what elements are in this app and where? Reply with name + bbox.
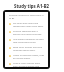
staticText: Set small daily goals and review them of… <box>13 22 45 28</box>
staticText: Use spaced repetition to learn new vocab… <box>13 38 45 44</box>
staticText: Practical routines to move from A1 to B2 <box>9 14 45 20</box>
staticText: Study tips A1-B2 <box>14 3 50 9</box>
staticText: Listen to podcasts slowly, then at norma… <box>13 54 45 60</box>
button[interactable]: Listen to podcasts slowly, then at norma… <box>9 54 45 60</box>
staticText: Practice speaking with a partner and rec… <box>13 30 45 36</box>
staticText: Write a short journal entry every evenin… <box>13 62 45 67</box>
button[interactable]: Practice speaking with a partner and rec… <box>9 30 45 36</box>
staticText: Read short articles and note unknown wor… <box>13 46 45 52</box>
button[interactable]: Use spaced repetition to learn new vocab… <box>9 38 45 44</box>
button[interactable]: Write a short journal entry every evenin… <box>9 62 45 67</box>
button[interactable]: Read short articles and note unknown wor… <box>9 46 45 52</box>
button[interactable]: Set small daily goals and review them of… <box>9 22 45 28</box>
